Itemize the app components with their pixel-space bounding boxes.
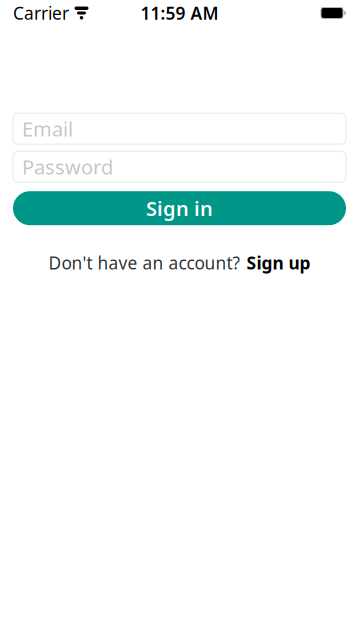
staticText: Email bbox=[22, 115, 73, 142]
staticText: Sign up bbox=[246, 251, 310, 274]
staticText: Don't have an account? bbox=[48, 251, 240, 274]
staticText: Password bbox=[22, 153, 113, 180]
staticText: 11:59 AM bbox=[140, 1, 218, 24]
staticText: Carrier bbox=[13, 1, 69, 24]
button[interactable]: Sign in bbox=[13, 191, 346, 225]
button[interactable]: Don't have an account? bbox=[13, 244, 346, 281]
staticText: Sign in bbox=[146, 195, 213, 221]
